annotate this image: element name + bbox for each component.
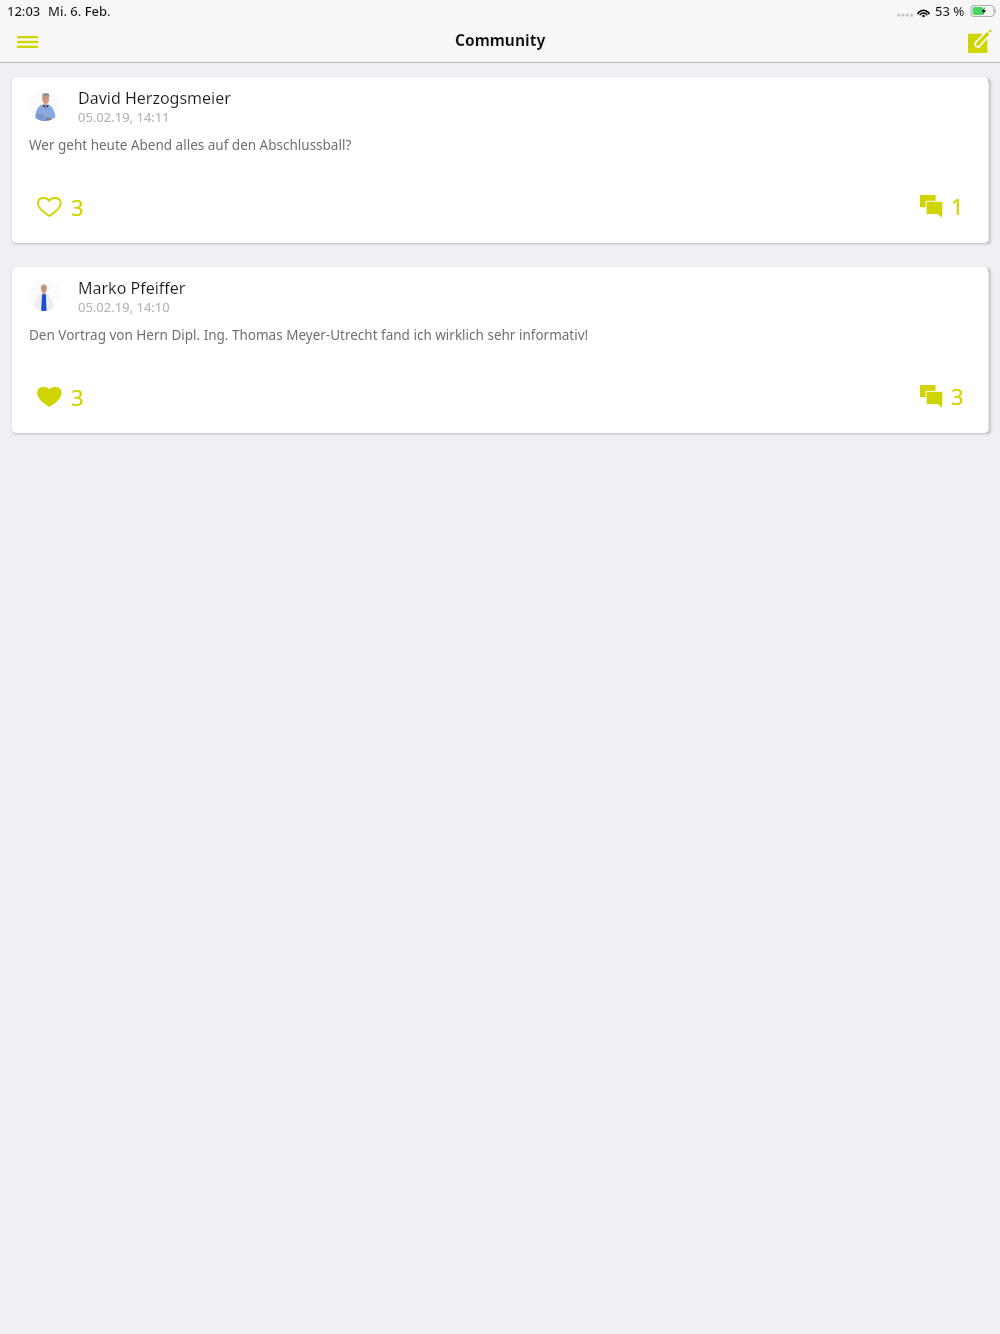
staticText: 1 xyxy=(951,191,964,221)
staticText: David Herzogsmeier xyxy=(78,87,231,109)
staticText: 3 xyxy=(71,382,84,412)
button[interactable]: Marko Pfeiffer xyxy=(12,267,988,433)
staticText: Wer geht heute Abend alles auf den Absch… xyxy=(29,136,352,154)
button[interactable]: Comments xyxy=(912,186,972,226)
button[interactable]: Compose new post xyxy=(960,24,1000,62)
staticText: 05.02.19, 14:10 xyxy=(78,298,170,316)
button[interactable]: Like xyxy=(29,187,92,227)
staticText: 53 % xyxy=(935,2,965,20)
staticText: 3 xyxy=(951,381,964,411)
button[interactable]: David Herzogsmeier xyxy=(12,77,988,243)
staticText: 05.02.19, 14:11 xyxy=(78,108,170,126)
button[interactable]: Comments xyxy=(912,376,972,416)
staticText: Marko Pfeiffer xyxy=(78,277,186,299)
staticText: Mi. 6. Feb. xyxy=(48,2,111,20)
button[interactable]: Menu xyxy=(8,23,46,61)
button[interactable]: Like xyxy=(29,377,92,417)
staticText: Den Vortrag von Hern Dipl. Ing. Thomas M… xyxy=(29,326,589,344)
staticText: 3 xyxy=(71,192,84,222)
staticText: 12:03 xyxy=(7,2,41,20)
staticText: Community xyxy=(455,29,546,50)
